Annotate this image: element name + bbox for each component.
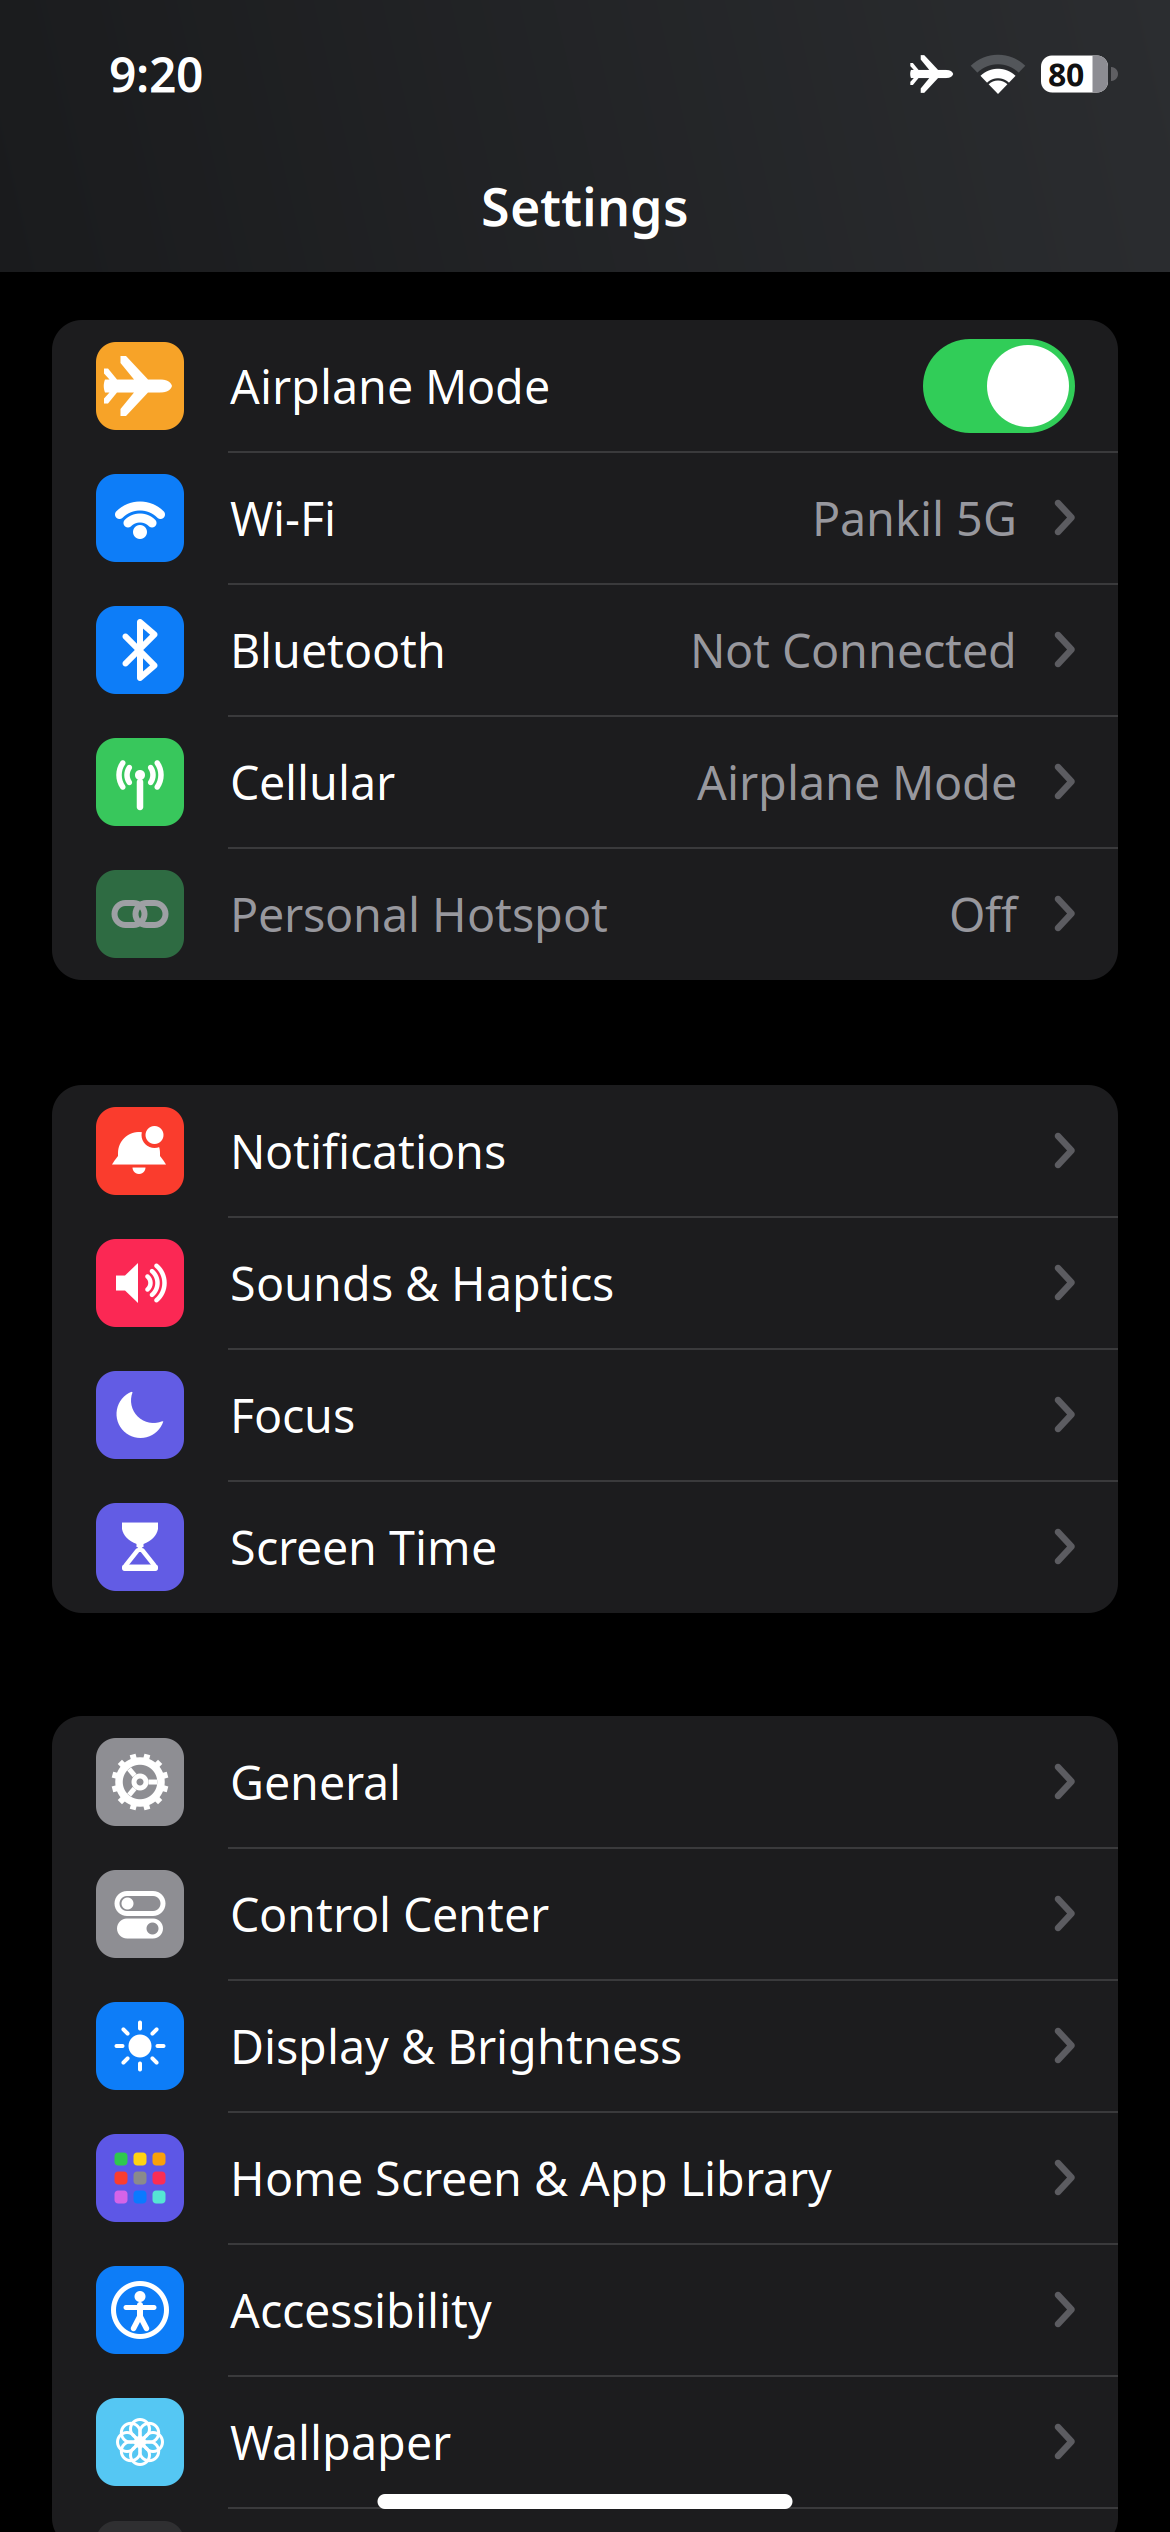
button[interactable]: Cellular — [52, 716, 1118, 848]
button[interactable]: Bluetooth — [52, 584, 1118, 716]
staticText: Not Connected — [690, 619, 1017, 681]
button[interactable]: General — [52, 1716, 1118, 1848]
button[interactable]: Screen Time — [52, 1481, 1118, 1613]
staticText: General — [230, 1751, 401, 1813]
staticText: Wi-Fi — [230, 487, 336, 549]
staticText: Bluetooth — [230, 619, 446, 681]
staticText: Cellular — [230, 751, 395, 813]
staticText: Screen Time — [230, 1516, 497, 1578]
staticText: Notifications — [230, 1120, 506, 1182]
staticText: Settings — [481, 171, 689, 241]
button[interactable]: Personal Hotspot — [52, 848, 1118, 980]
staticText: Display & Brightness — [230, 2015, 682, 2077]
staticText: 80 — [1048, 53, 1084, 95]
button[interactable]: Wi-Fi — [52, 452, 1118, 584]
button[interactable]: Sounds & Haptics — [52, 1217, 1118, 1349]
button[interactable]: Notifications — [52, 1085, 1118, 1217]
staticText: Pankil 5G — [812, 487, 1017, 549]
button[interactable]: Focus — [52, 1349, 1118, 1481]
staticText: Accessibility — [230, 2279, 492, 2341]
staticText: Control Center — [230, 1883, 549, 1945]
staticText: Home Screen & App Library — [230, 2147, 832, 2209]
button[interactable]: Airplane Mode — [923, 339, 1075, 433]
staticText: Off — [949, 883, 1017, 945]
button[interactable]: Display & Brightness — [52, 1980, 1118, 2112]
staticText: Airplane Mode — [697, 751, 1017, 813]
staticText: Personal Hotspot — [230, 883, 608, 945]
button[interactable]: Airplane Mode — [52, 320, 1118, 452]
staticText: 9:20 — [109, 42, 203, 106]
button[interactable]: Control Center — [52, 1848, 1118, 1980]
staticText: Wallpaper — [230, 2411, 451, 2473]
staticText: Focus — [230, 1384, 355, 1446]
button[interactable]: Home Screen & App Library — [52, 2112, 1118, 2244]
staticText: Airplane Mode — [230, 355, 550, 417]
button[interactable]: Wallpaper — [52, 2376, 1118, 2508]
button[interactable]: Accessibility — [52, 2244, 1118, 2376]
staticText: Sounds & Haptics — [230, 1252, 614, 1314]
